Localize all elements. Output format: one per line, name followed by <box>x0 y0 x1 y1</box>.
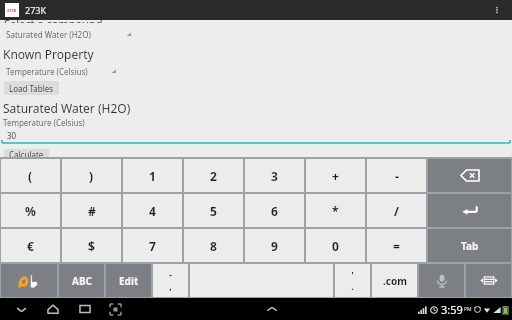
button[interactable]: Screenshot <box>104 298 126 320</box>
button[interactable]: ( <box>1 159 60 192</box>
staticText: = <box>393 238 400 254</box>
button[interactable]: More options <box>488 1 506 19</box>
button[interactable]: 9 <box>245 229 304 262</box>
staticText: Saturated Water (H2O) <box>3 100 131 116</box>
staticText: * <box>332 203 339 219</box>
button[interactable]: Tab <box>428 229 511 262</box>
button[interactable]: Voice input <box>419 264 464 297</box>
button[interactable]: 4 <box>123 194 182 227</box>
staticText: ABC <box>72 274 92 288</box>
button[interactable]: Saturated Water (H2O) <box>6 28 131 40</box>
button[interactable]: * <box>306 194 365 227</box>
staticText: ( <box>28 168 33 184</box>
staticText: 5 <box>210 203 217 219</box>
staticText: Saturated Water (H2O) <box>6 29 91 40</box>
staticText: / <box>394 203 399 219</box>
staticText: % <box>25 203 36 219</box>
staticText: $ <box>88 238 95 254</box>
staticText: 6 <box>271 203 278 219</box>
staticText: 273K <box>25 4 47 16</box>
staticText: , <box>169 280 172 292</box>
button[interactable]: $ <box>62 229 121 262</box>
button[interactable]: = <box>367 229 426 262</box>
button[interactable]: € <box>1 229 60 262</box>
button[interactable]: Handwriting <box>1 264 57 297</box>
button[interactable]: Delete <box>428 159 511 192</box>
staticText: 2 <box>210 168 217 184</box>
button[interactable]: Edit <box>106 264 151 297</box>
staticText: Temperature (Celsius) <box>6 66 88 77</box>
button[interactable]: 8 <box>184 229 243 262</box>
staticText: . <box>351 280 354 292</box>
staticText: ) <box>89 168 94 184</box>
staticText: - <box>395 168 399 184</box>
staticText: Tab <box>461 239 479 253</box>
staticText: 4 <box>149 203 156 219</box>
button[interactable]: 5 <box>184 194 243 227</box>
staticText: Select a compound <box>4 20 103 23</box>
button[interactable]: Calculate <box>4 149 49 157</box>
button[interactable]: .com <box>372 264 417 297</box>
button[interactable]: - <box>153 264 188 297</box>
staticText: 3:59 <box>441 302 463 317</box>
button[interactable]: - <box>367 159 426 192</box>
staticText: Load Tables <box>9 83 54 94</box>
staticText: Known Property <box>3 46 94 62</box>
button[interactable]: Enter <box>428 194 511 227</box>
button[interactable]: / <box>367 194 426 227</box>
staticText: 9 <box>271 238 278 254</box>
button[interactable]: 2 <box>184 159 243 192</box>
button[interactable]: Load Tables <box>4 81 59 95</box>
staticText: Edit <box>119 274 139 288</box>
staticText: 1 <box>149 168 156 184</box>
button[interactable]: % <box>1 194 60 227</box>
staticText: .com <box>383 274 407 288</box>
staticText: 30 <box>7 130 17 141</box>
button[interactable]: 30 <box>0 130 512 144</box>
staticText: PM <box>464 306 472 313</box>
staticText: Temperature (Celsius) <box>3 117 85 128</box>
staticText: € <box>27 238 34 254</box>
button[interactable]: 1 <box>123 159 182 192</box>
staticText: 8 <box>210 238 217 254</box>
staticText: - <box>169 269 172 280</box>
button[interactable]: 7 <box>123 229 182 262</box>
button[interactable]: Hide keyboard <box>10 298 32 320</box>
staticText: + <box>332 168 339 184</box>
button[interactable]: ) <box>62 159 121 192</box>
button[interactable]: ' <box>335 264 370 297</box>
staticText: 273K <box>7 8 17 13</box>
staticText: # <box>88 203 96 219</box>
button[interactable]: Home <box>42 298 64 320</box>
button[interactable]: # <box>62 194 121 227</box>
button[interactable]: 3 <box>245 159 304 192</box>
button[interactable]: 0 <box>306 229 365 262</box>
button[interactable]: ABC <box>59 264 104 297</box>
button[interactable]: + <box>306 159 365 192</box>
staticText: 3 <box>271 168 278 184</box>
staticText: ' <box>351 269 354 280</box>
button[interactable]: Recent apps <box>74 298 96 320</box>
button[interactable]: 6 <box>245 194 304 227</box>
staticText: Calculate <box>9 149 44 157</box>
staticText: 0 <box>332 238 339 254</box>
button[interactable]: Switch keyboard <box>466 264 511 297</box>
button[interactable]: Temperature (Celsius) <box>6 65 116 77</box>
staticText: 7 <box>149 238 156 254</box>
